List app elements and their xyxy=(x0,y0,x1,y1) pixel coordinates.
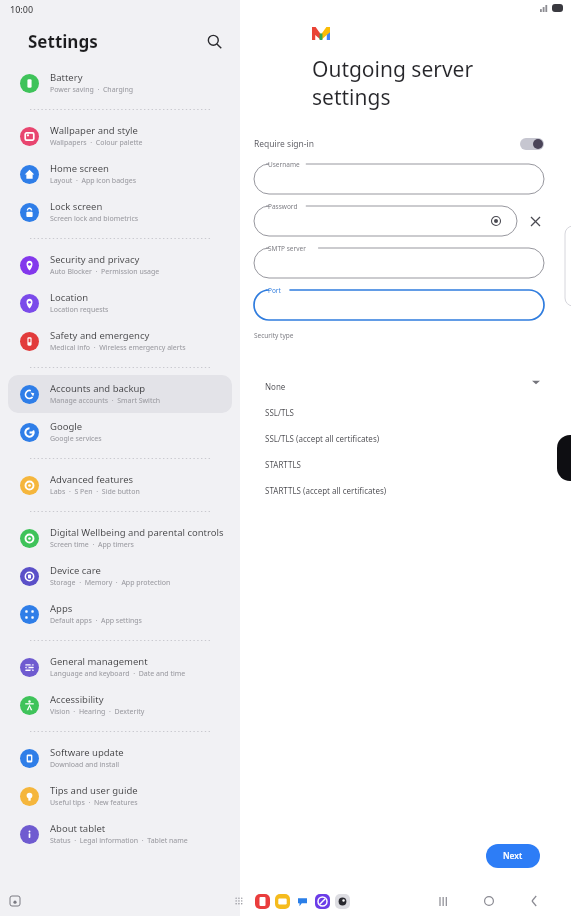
button[interactable]: Lock screen xyxy=(8,193,232,231)
staticText: Tips and user guide xyxy=(50,784,138,797)
button[interactable]: None xyxy=(253,373,523,399)
staticText: Accounts and backup xyxy=(50,382,146,395)
button[interactable]: Apps xyxy=(8,595,232,633)
staticText: Default apps · App settings xyxy=(50,616,142,626)
button[interactable]: Camera xyxy=(335,894,350,909)
staticText: Screen lock and biometrics xyxy=(50,214,139,224)
button[interactable]: Google xyxy=(8,413,232,451)
button[interactable]: Wallpaper and style xyxy=(8,117,232,155)
staticText: Status · Legal information · Tablet name xyxy=(50,836,188,846)
button[interactable]: Tips and user guide xyxy=(8,777,232,815)
button[interactable]: Accessibility xyxy=(8,686,232,724)
staticText: Layout · App icon badges xyxy=(50,176,137,186)
staticText: Google services xyxy=(50,434,102,444)
staticText: Username xyxy=(268,160,300,169)
staticText: General management xyxy=(50,655,148,668)
button[interactable]: SMTP server xyxy=(254,248,544,278)
staticText: Storage · Memory · App protection xyxy=(50,578,171,588)
staticText: Outgoing server settings xyxy=(312,55,474,111)
staticText: Vision · Hearing · Dexterity xyxy=(50,707,145,717)
button[interactable]: Notes xyxy=(255,894,270,909)
button[interactable]: Clear xyxy=(526,212,544,230)
button[interactable]: Files xyxy=(275,894,290,909)
button[interactable]: Port xyxy=(254,290,544,320)
staticText: Wallpaper and style xyxy=(50,124,138,137)
button[interactable]: Software update xyxy=(8,739,232,777)
staticText: Security type xyxy=(254,331,294,340)
staticText: Settings xyxy=(28,30,98,53)
button[interactable]: Recents xyxy=(6,892,24,910)
staticText: Apps xyxy=(50,602,73,615)
staticText: Software update xyxy=(50,746,124,759)
staticText: Labs · S Pen · Side button xyxy=(50,487,140,497)
staticText: Language and keyboard · Date and time xyxy=(50,669,186,679)
staticText: STARTTLS (accept all certificates) xyxy=(265,485,387,496)
staticText: Digital Wellbeing and parental controls xyxy=(50,526,224,539)
button[interactable]: About tablet xyxy=(8,815,232,853)
staticText: Medical info · Wireless emergency alerts xyxy=(50,343,186,353)
staticText: Safety and emergency xyxy=(50,329,150,342)
button[interactable]: SSL/TLS (accept all certificates) xyxy=(253,425,523,451)
staticText: Location requests xyxy=(50,305,109,315)
staticText: STARTTLS xyxy=(265,459,302,470)
button[interactable]: Username xyxy=(254,164,544,194)
staticText: Google xyxy=(50,420,83,433)
button[interactable]: STARTTLS (accept all certificates) xyxy=(253,477,523,503)
button[interactable]: Battery xyxy=(8,64,232,102)
staticText: Accessibility xyxy=(50,693,104,706)
button[interactable]: Location xyxy=(8,284,232,322)
staticText: Port xyxy=(268,286,281,295)
staticText: Wallpapers · Colour palette xyxy=(50,138,143,148)
button[interactable]: Home screen xyxy=(8,155,232,193)
button[interactable]: STARTTLS xyxy=(253,451,523,477)
button[interactable]: Search xyxy=(200,27,228,55)
button[interactable]: Next xyxy=(486,844,540,868)
staticText: Password xyxy=(268,202,298,211)
staticText: Manage accounts · Smart Switch xyxy=(50,396,161,406)
staticText: Auto Blocker · Permission usage xyxy=(50,267,160,277)
staticText: SSL/TLS xyxy=(265,407,294,418)
button[interactable]: Digital Wellbeing and parental controls xyxy=(8,519,232,557)
button[interactable]: Accounts and backup xyxy=(8,375,232,413)
staticText: Screen time · App timers xyxy=(50,540,134,550)
staticText: Download and install xyxy=(50,760,120,770)
button[interactable]: Show password xyxy=(489,214,503,228)
button[interactable]: Device care xyxy=(8,557,232,595)
staticText: Location xyxy=(50,291,89,304)
staticText: Device care xyxy=(50,564,101,577)
staticText: SMTP server xyxy=(268,244,306,253)
button[interactable]: Browser xyxy=(315,894,330,909)
button[interactable]: General management xyxy=(8,648,232,686)
button[interactable]: SSL/TLS xyxy=(253,399,523,425)
staticText: Lock screen xyxy=(50,200,103,213)
button[interactable]: Recent apps xyxy=(431,889,455,913)
button[interactable]: Home xyxy=(477,889,501,913)
button[interactable]: All apps xyxy=(230,892,248,910)
button[interactable]: Require sign-in xyxy=(254,135,544,153)
staticText: Home screen xyxy=(50,162,109,175)
staticText: Power saving · Charging xyxy=(50,85,134,95)
button[interactable]: Messages xyxy=(295,894,310,909)
button[interactable]: Advanced features xyxy=(8,466,232,504)
staticText: Useful tips · New features xyxy=(50,798,138,808)
staticText: SSL/TLS (accept all certificates) xyxy=(265,433,380,444)
staticText: 10:00 xyxy=(10,3,34,15)
staticText: About tablet xyxy=(50,822,106,835)
button[interactable]: Security and privacy xyxy=(8,246,232,284)
staticText: Require sign-in xyxy=(254,138,315,150)
staticText: Battery xyxy=(50,71,83,84)
button[interactable]: Back xyxy=(523,889,547,913)
button[interactable]: Password xyxy=(254,206,517,236)
button[interactable]: Safety and emergency xyxy=(8,322,232,360)
staticText: Next xyxy=(503,850,523,862)
staticText: None xyxy=(265,381,286,392)
staticText: Advanced features xyxy=(50,473,134,486)
staticText: Security and privacy xyxy=(50,253,140,266)
